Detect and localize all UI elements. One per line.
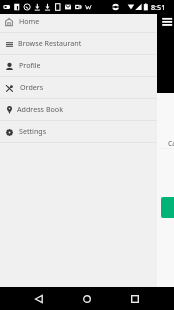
- button[interactable]: Browse Restaurant: [0, 33, 157, 55]
- staticText: Home: [19, 16, 40, 26]
- button[interactable]: Home: [79, 291, 95, 307]
- button[interactable]: [161, 197, 174, 218]
- staticText: Orders: [20, 82, 44, 92]
- staticText: 8:51: [151, 2, 166, 12]
- button[interactable]: Settings: [0, 121, 157, 143]
- button[interactable]: Open navigation drawer: [159, 14, 174, 30]
- button[interactable]: Profile: [0, 55, 157, 77]
- button[interactable]: Address Book: [0, 99, 157, 121]
- staticText: Browse Restaurant: [18, 38, 82, 48]
- button[interactable]: Home: [0, 11, 157, 33]
- button[interactable]: Back: [31, 291, 47, 307]
- staticText: Address Book: [17, 104, 63, 114]
- button[interactable]: Recent apps: [127, 291, 143, 307]
- staticText: Settings: [19, 126, 47, 136]
- button[interactable]: Orders: [0, 77, 157, 99]
- staticText: Profile: [19, 60, 41, 70]
- staticText: Ca: [168, 139, 174, 148]
